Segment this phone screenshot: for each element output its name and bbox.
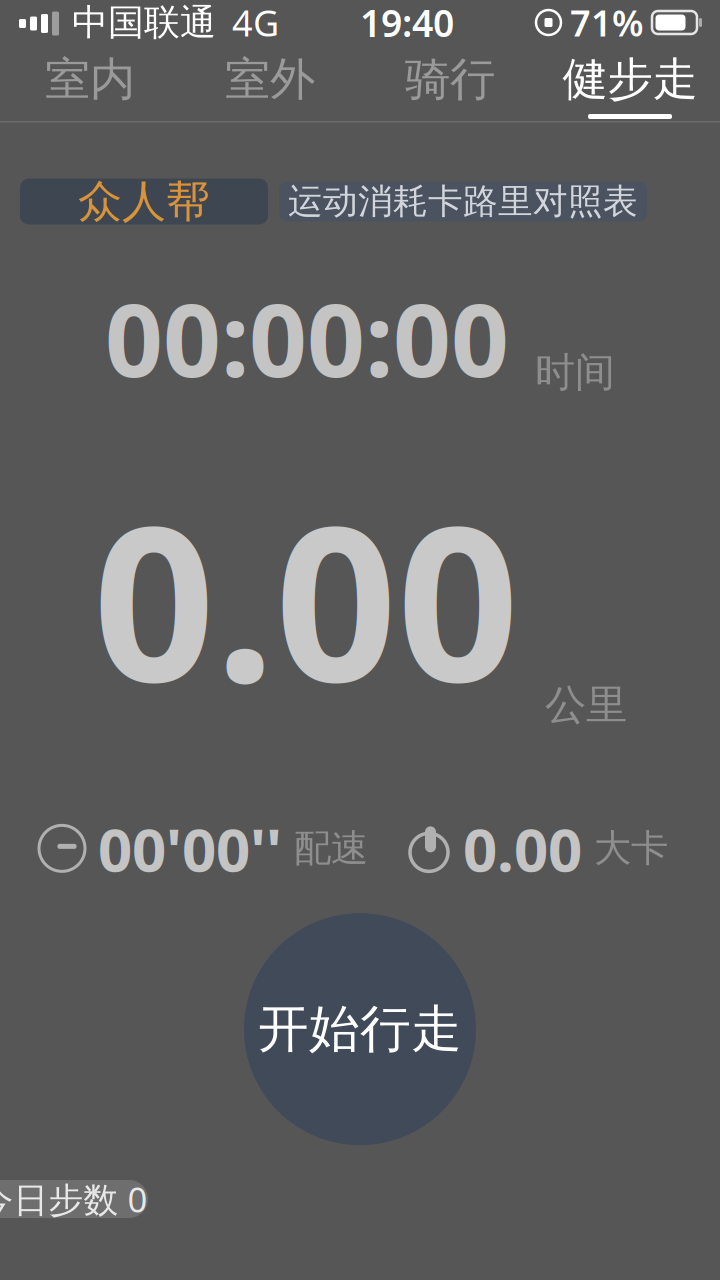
staticText: 公里: [545, 680, 627, 730]
staticText: 健步走: [562, 52, 697, 107]
button[interactable]: 健步走: [540, 45, 720, 121]
button[interactable]: 室内: [0, 45, 180, 121]
staticText: 时间: [535, 348, 615, 397]
staticText: 开始行走: [258, 998, 462, 1060]
staticText: 室内: [45, 52, 135, 107]
staticText: 4G: [232, 0, 279, 46]
staticText: 19:40: [360, 0, 454, 47]
staticText: 00:00:00: [105, 270, 509, 405]
staticText: 运动消耗卡路里对照表: [288, 180, 638, 223]
staticText: 大卡: [594, 825, 668, 871]
staticText: 0.00: [93, 457, 519, 740]
button[interactable]: 运动消耗卡路里对照表: [279, 181, 647, 221]
button[interactable]: 开始行走: [244, 913, 476, 1145]
staticText: 0.00: [463, 808, 582, 888]
staticText: 配速: [294, 825, 368, 871]
staticText: 室外: [225, 52, 315, 107]
button[interactable]: 室外: [180, 45, 360, 121]
staticText: 中国联通: [72, 0, 216, 45]
staticText: 众人帮: [78, 174, 210, 228]
button[interactable]: 众人帮: [20, 178, 268, 224]
staticText: 71%: [570, 0, 644, 46]
button[interactable]: 今日步数 0: [0, 1180, 148, 1218]
button[interactable]: 骑行: [360, 45, 540, 121]
staticText: 00'00'': [98, 808, 282, 888]
staticText: 今日步数 0: [0, 1176, 147, 1222]
staticText: 骑行: [405, 52, 495, 107]
